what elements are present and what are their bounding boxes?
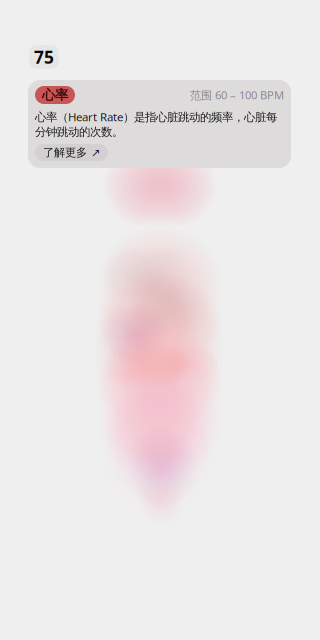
button[interactable]: 75 xyxy=(29,45,59,69)
staticText: 75 xyxy=(34,45,54,69)
staticText: 心率 xyxy=(42,87,68,103)
staticText: 心率（Heart Rate）是指心脏跳动的频率，心脏每分钟跳动的次数。 xyxy=(35,109,277,139)
staticText: 范围 60 – 100 BPM xyxy=(190,87,284,103)
staticText: 了解更多 ↗ xyxy=(43,145,100,160)
button[interactable]: 了解更多 ↗ xyxy=(35,144,108,161)
